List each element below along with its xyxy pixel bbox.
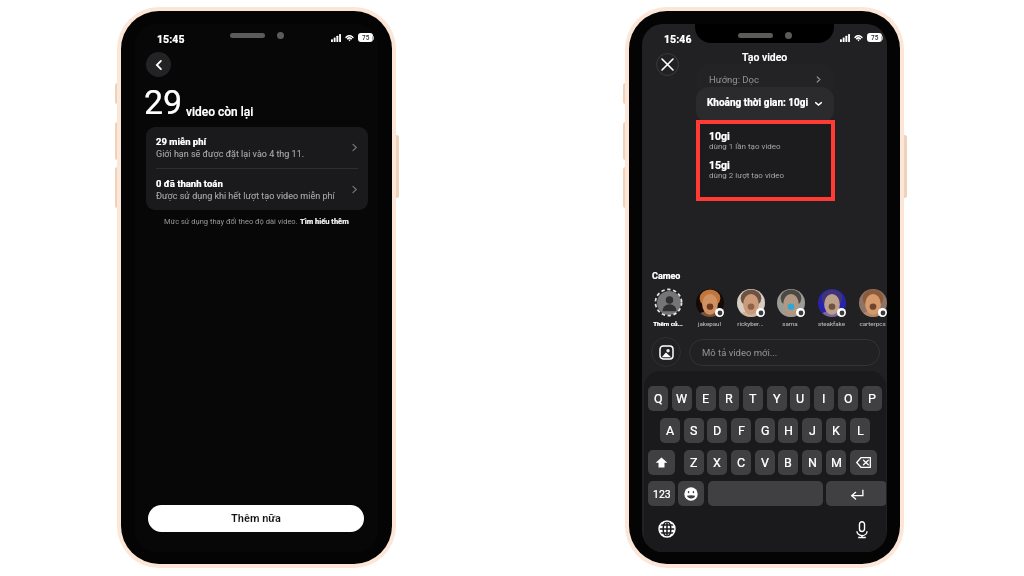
staticText: S (690, 423, 698, 438)
button[interactable]: T (743, 386, 763, 411)
staticText: N (808, 455, 817, 470)
button[interactable]: Change language (656, 518, 678, 540)
button[interactable]: Thêm nữa (148, 505, 364, 532)
button[interactable]: Shift (648, 450, 675, 475)
staticText: Mô tả video mới... (702, 347, 778, 358)
button[interactable]: Y (767, 386, 787, 411)
staticText: Cameo (652, 271, 681, 282)
staticText: K (832, 423, 840, 438)
staticText: 10gi (709, 130, 730, 142)
staticText: O (844, 391, 853, 406)
button[interactable]: G (755, 418, 775, 443)
button[interactable]: V (755, 450, 775, 475)
button[interactable]: Q (648, 386, 668, 411)
staticText: Thêm nữa (231, 512, 281, 525)
staticText: Khoảng thời gian: 10gi (707, 97, 809, 109)
button[interactable]: L (850, 418, 870, 443)
button[interactable]: D (707, 418, 727, 443)
button[interactable]: Thêm củ... (648, 288, 688, 327)
staticText: Mức sử dụng thay đổi theo độ dài video. (164, 217, 300, 226)
button[interactable]: Add image (651, 337, 681, 367)
staticText: J (809, 423, 816, 438)
staticText: L (857, 423, 864, 438)
button[interactable]: B (778, 450, 798, 475)
staticText: Được sử dụng khi hết lượt tạo video miễn… (156, 191, 335, 202)
staticText: 75 (871, 34, 879, 42)
staticText: dùng 1 lần tạo video (709, 142, 781, 151)
button[interactable]: Space (708, 481, 823, 506)
staticText: G (761, 423, 770, 438)
staticText: steakfake (818, 320, 845, 327)
button[interactable]: jakepaul (689, 288, 729, 327)
button[interactable]: Khoảng thời gian: 10gi (696, 87, 834, 123)
staticText: Giới hạn sẽ được đặt lại vào 4 thg 11. (156, 149, 305, 160)
button[interactable]: carterpcs (852, 288, 887, 327)
button[interactable]: X (707, 450, 727, 475)
staticText: Y (773, 391, 781, 406)
staticText: 75 (362, 34, 370, 42)
staticText: P (868, 391, 876, 406)
staticText: 29 miễn phí (156, 136, 207, 147)
button[interactable]: K (826, 418, 846, 443)
button[interactable]: 123 (648, 481, 675, 506)
button[interactable]: W (672, 386, 692, 411)
staticText: W (676, 391, 688, 406)
button[interactable]: steakfake (811, 288, 851, 327)
button[interactable]: R (719, 386, 739, 411)
staticText: Tạo video (742, 51, 788, 63)
button[interactable]: Mô tả video mới... (689, 339, 880, 366)
button[interactable]: J (802, 418, 822, 443)
staticText: B (784, 455, 792, 470)
staticText: I (822, 391, 826, 406)
button[interactable]: Voice input (851, 518, 873, 540)
staticText: 15:45 (157, 33, 185, 45)
button[interactable]: Backspace (850, 450, 877, 475)
button[interactable]: I (814, 386, 834, 411)
staticText: 29 (144, 82, 183, 122)
staticText: C (737, 455, 746, 470)
button[interactable]: rickyber... (730, 288, 770, 327)
button[interactable]: 29 miễn phí (146, 127, 368, 168)
staticText: rickyber... (737, 320, 764, 327)
staticText: A (666, 423, 675, 438)
button[interactable]: Z (684, 450, 704, 475)
staticText: Q (654, 391, 663, 406)
staticText: 15gi (709, 159, 730, 171)
staticText: Hướng: Dọc (709, 74, 814, 85)
staticText: video còn lại (186, 105, 254, 119)
staticText: R (725, 391, 733, 406)
button[interactable]: M (826, 450, 846, 475)
staticText: E (702, 391, 710, 406)
staticText: Tìm hiểu thêm (300, 217, 349, 226)
staticText: Thêm củ... (653, 320, 683, 327)
staticText: D (713, 423, 722, 438)
button[interactable]: Back (146, 52, 171, 77)
button[interactable]: S (684, 418, 704, 443)
button[interactable]: sama (770, 288, 810, 327)
staticText: 123 (653, 488, 671, 500)
button[interactable]: Hướng: Dọc (697, 64, 834, 94)
button[interactable]: Enter (826, 481, 886, 506)
staticText: sama (782, 320, 798, 327)
staticText: 0 đã thanh toán (156, 178, 223, 189)
button[interactable]: Close (656, 53, 679, 76)
staticText: X (713, 455, 721, 470)
button[interactable]: P (862, 386, 882, 411)
staticText: M (831, 455, 842, 470)
button[interactable]: Emoji (678, 481, 704, 506)
staticText: Z (690, 455, 698, 470)
button[interactable]: E (696, 386, 716, 411)
button[interactable]: N (802, 450, 822, 475)
staticText: carterpcs (859, 320, 886, 327)
staticText: 15:46 (664, 33, 692, 45)
staticText: jakepaul (698, 320, 721, 327)
staticText: U (796, 391, 805, 406)
button[interactable]: O (838, 386, 858, 411)
button[interactable]: F (731, 418, 751, 443)
button[interactable]: A (660, 418, 680, 443)
staticText: F (738, 423, 745, 438)
button[interactable]: H (778, 418, 798, 443)
button[interactable]: 0 đã thanh toán (146, 169, 368, 210)
button[interactable]: U (790, 386, 810, 411)
button[interactable]: C (731, 450, 751, 475)
